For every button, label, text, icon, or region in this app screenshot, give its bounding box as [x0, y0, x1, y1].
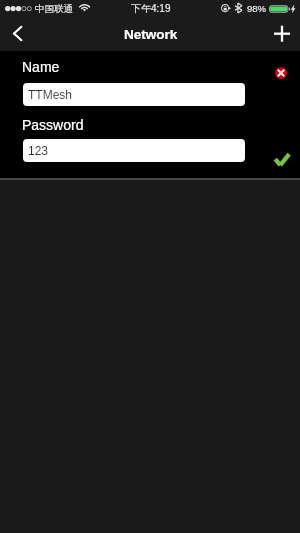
button[interactable]: Valid — [271, 150, 293, 172]
button[interactable]: Add — [260, 17, 300, 51]
button[interactable]: 123 — [23, 139, 245, 162]
button[interactable]: Back — [0, 17, 44, 51]
button[interactable]: TTMesh — [23, 83, 245, 106]
staticText: TTMesh — [28, 88, 73, 101]
staticText: 下午4:19 — [131, 2, 171, 15]
staticText: 中国联通 — [35, 3, 73, 15]
staticText: 98% — [247, 3, 267, 14]
button[interactable]: Invalid — [275, 67, 287, 79]
staticText: 123 — [28, 144, 49, 157]
staticText: Network — [124, 27, 178, 42]
staticText: Password — [22, 117, 84, 133]
staticText: Name — [22, 59, 60, 75]
